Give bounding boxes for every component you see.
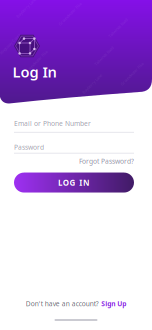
button[interactable]: LOG IN bbox=[14, 173, 134, 193]
staticText: Email or Phone Number bbox=[14, 119, 91, 128]
staticText: Forgot Password? bbox=[79, 157, 134, 166]
button[interactable]: Forgot Password? bbox=[14, 157, 134, 166]
staticText: LOG IN bbox=[58, 177, 90, 188]
staticText: Don't have an account? bbox=[26, 299, 99, 308]
button[interactable]: Don't have an account? bbox=[26, 299, 126, 308]
staticText: Password bbox=[14, 143, 44, 152]
staticText: Kingsway Court bbox=[0, 41, 23, 47]
staticText: Log In bbox=[12, 62, 56, 81]
staticText: Sign Up bbox=[101, 299, 126, 308]
